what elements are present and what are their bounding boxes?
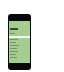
button[interactable] (9, 56, 30, 59)
button[interactable] (9, 38, 30, 41)
button[interactable] (9, 47, 30, 50)
button[interactable] (9, 44, 30, 47)
button[interactable] (9, 50, 30, 53)
button[interactable] (9, 53, 30, 56)
button[interactable] (9, 41, 30, 44)
